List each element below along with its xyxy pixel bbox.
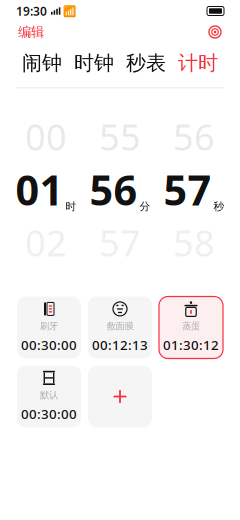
button[interactable]: 刷牙 — [17, 296, 81, 358]
staticText: 56 — [89, 162, 137, 217]
button[interactable]: 计时 — [172, 48, 224, 78]
staticText: 57 — [163, 162, 211, 217]
staticText: 刷牙 — [40, 320, 58, 332]
staticText: 01:30:12 — [163, 336, 219, 354]
staticText: 19:30 — [16, 3, 47, 19]
staticText: 57 — [99, 219, 141, 266]
staticText: 时 — [65, 200, 76, 213]
staticText: 默认 — [40, 389, 58, 401]
button[interactable]: 闹钟 — [16, 48, 68, 78]
staticText: 分 — [139, 200, 150, 213]
button[interactable]: 录制 — [206, 23, 224, 41]
staticText: 闹钟 — [22, 51, 62, 75]
button[interactable]: 添加计时 — [88, 365, 152, 427]
button[interactable]: 时钟 — [68, 48, 120, 78]
staticText: 📶 — [63, 5, 76, 17]
button[interactable]: 蒸蛋 — [159, 296, 223, 358]
staticText: 时钟 — [74, 51, 114, 75]
staticText: 55 — [99, 113, 141, 160]
staticText: 秒表 — [126, 51, 166, 75]
staticText: 编辑 — [18, 24, 44, 40]
staticText: 秒 — [213, 200, 224, 213]
button[interactable]: 编辑 — [16, 21, 46, 43]
staticText: 00:30:00 — [21, 405, 77, 423]
staticText: 01 — [15, 162, 63, 217]
staticText: 00 — [25, 113, 67, 160]
button[interactable]: 秒表 — [120, 48, 172, 78]
button[interactable]: 敷面膜 — [88, 296, 152, 358]
staticText: 02 — [25, 219, 67, 266]
staticText: 00:30:00 — [21, 336, 77, 354]
staticText: 蒸蛋 — [182, 320, 200, 332]
staticText: 58 — [173, 219, 215, 266]
staticText: 00:12:13 — [92, 336, 148, 354]
staticText: 敷面膜 — [106, 320, 133, 332]
staticText: 56 — [173, 113, 215, 160]
button[interactable]: 默认 — [17, 365, 81, 427]
staticText: 计时 — [178, 51, 218, 75]
